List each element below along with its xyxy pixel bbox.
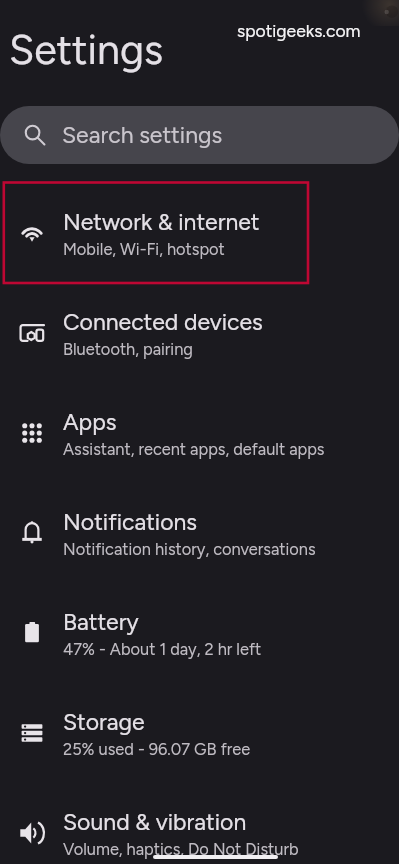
button[interactable]: Search bbox=[0, 106, 399, 164]
staticText: Battery bbox=[63, 608, 139, 636]
staticText: 25% used - 96.07 GB free bbox=[63, 739, 251, 759]
staticText: Settings bbox=[9, 25, 164, 74]
staticText: Sound & vibration bbox=[63, 808, 247, 836]
button[interactable]: Notifications bbox=[0, 483, 399, 583]
button[interactable]: Apps bbox=[0, 383, 399, 483]
staticText: Storage bbox=[63, 708, 145, 736]
other: Search bbox=[24, 124, 46, 146]
staticText: Search settings bbox=[62, 121, 223, 149]
button[interactable]: Sound & vibration bbox=[0, 783, 399, 864]
staticText: Assistant, recent apps, default apps bbox=[63, 439, 325, 459]
staticText: Apps bbox=[63, 408, 117, 436]
button[interactable]: Battery bbox=[0, 583, 399, 683]
staticText: spotigeeks.com bbox=[237, 20, 361, 41]
button[interactable]: Storage bbox=[0, 683, 399, 783]
staticText: Network & internet bbox=[63, 208, 260, 236]
button[interactable]: Network & internet bbox=[0, 183, 399, 283]
button[interactable]: Connected devices bbox=[0, 283, 399, 383]
staticText: Bluetooth, pairing bbox=[63, 339, 193, 359]
staticText: Notifications bbox=[63, 508, 198, 536]
staticText: Volume, haptics, Do Not Disturb bbox=[63, 839, 299, 859]
staticText: Mobile, Wi-Fi, hotspot bbox=[63, 239, 225, 259]
staticText: 47% - About 1 day, 2 hr left bbox=[63, 639, 262, 659]
staticText: Notification history, conversations bbox=[63, 539, 316, 559]
staticText: Connected devices bbox=[63, 308, 263, 336]
